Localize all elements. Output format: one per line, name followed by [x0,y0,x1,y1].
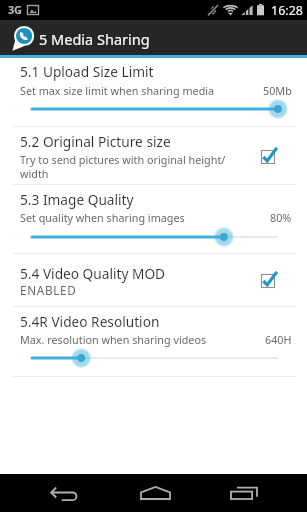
button[interactable]: Recent apps [195,474,307,512]
button[interactable]: 5.2 Original Picture size [0,127,307,185]
button[interactable]: 5.3 Image Quality [0,185,307,254]
button[interactable]: 5.4 Video Quality MOD [0,254,307,307]
staticText: Max. resolution when sharing videos [20,332,265,347]
staticText: Try to send pictures with original heigh… [20,152,292,181]
button[interactable]: 5 Media Sharing [0,20,307,55]
button[interactable]: 5.1 Upload Size Limit [0,58,307,127]
staticText: 5 Media Sharing [39,29,150,49]
staticText: 5.2 Original Picture size [20,132,171,151]
staticText: 5.4R Video Resolution [20,312,160,331]
staticText: 16:28 [271,2,303,19]
staticText: ENABLED [20,282,292,298]
staticText: Set max size limit when sharing media [20,83,263,98]
button[interactable]: Home [115,474,195,512]
button[interactable]: 5.4R Video Resolution [0,307,307,377]
staticText: 80% [270,210,292,225]
staticText: 50Mb [263,83,292,98]
staticText: 3G [8,2,22,17]
button[interactable]: Back [0,474,115,512]
staticText: 5.1 Upload Size Limit [20,62,154,81]
staticText: 640H [265,332,292,347]
staticText: 5.4 Video Quality MOD [20,264,166,283]
staticText: Set quality when sharing images [20,210,270,225]
staticText: 5.3 Image Quality [20,190,134,209]
